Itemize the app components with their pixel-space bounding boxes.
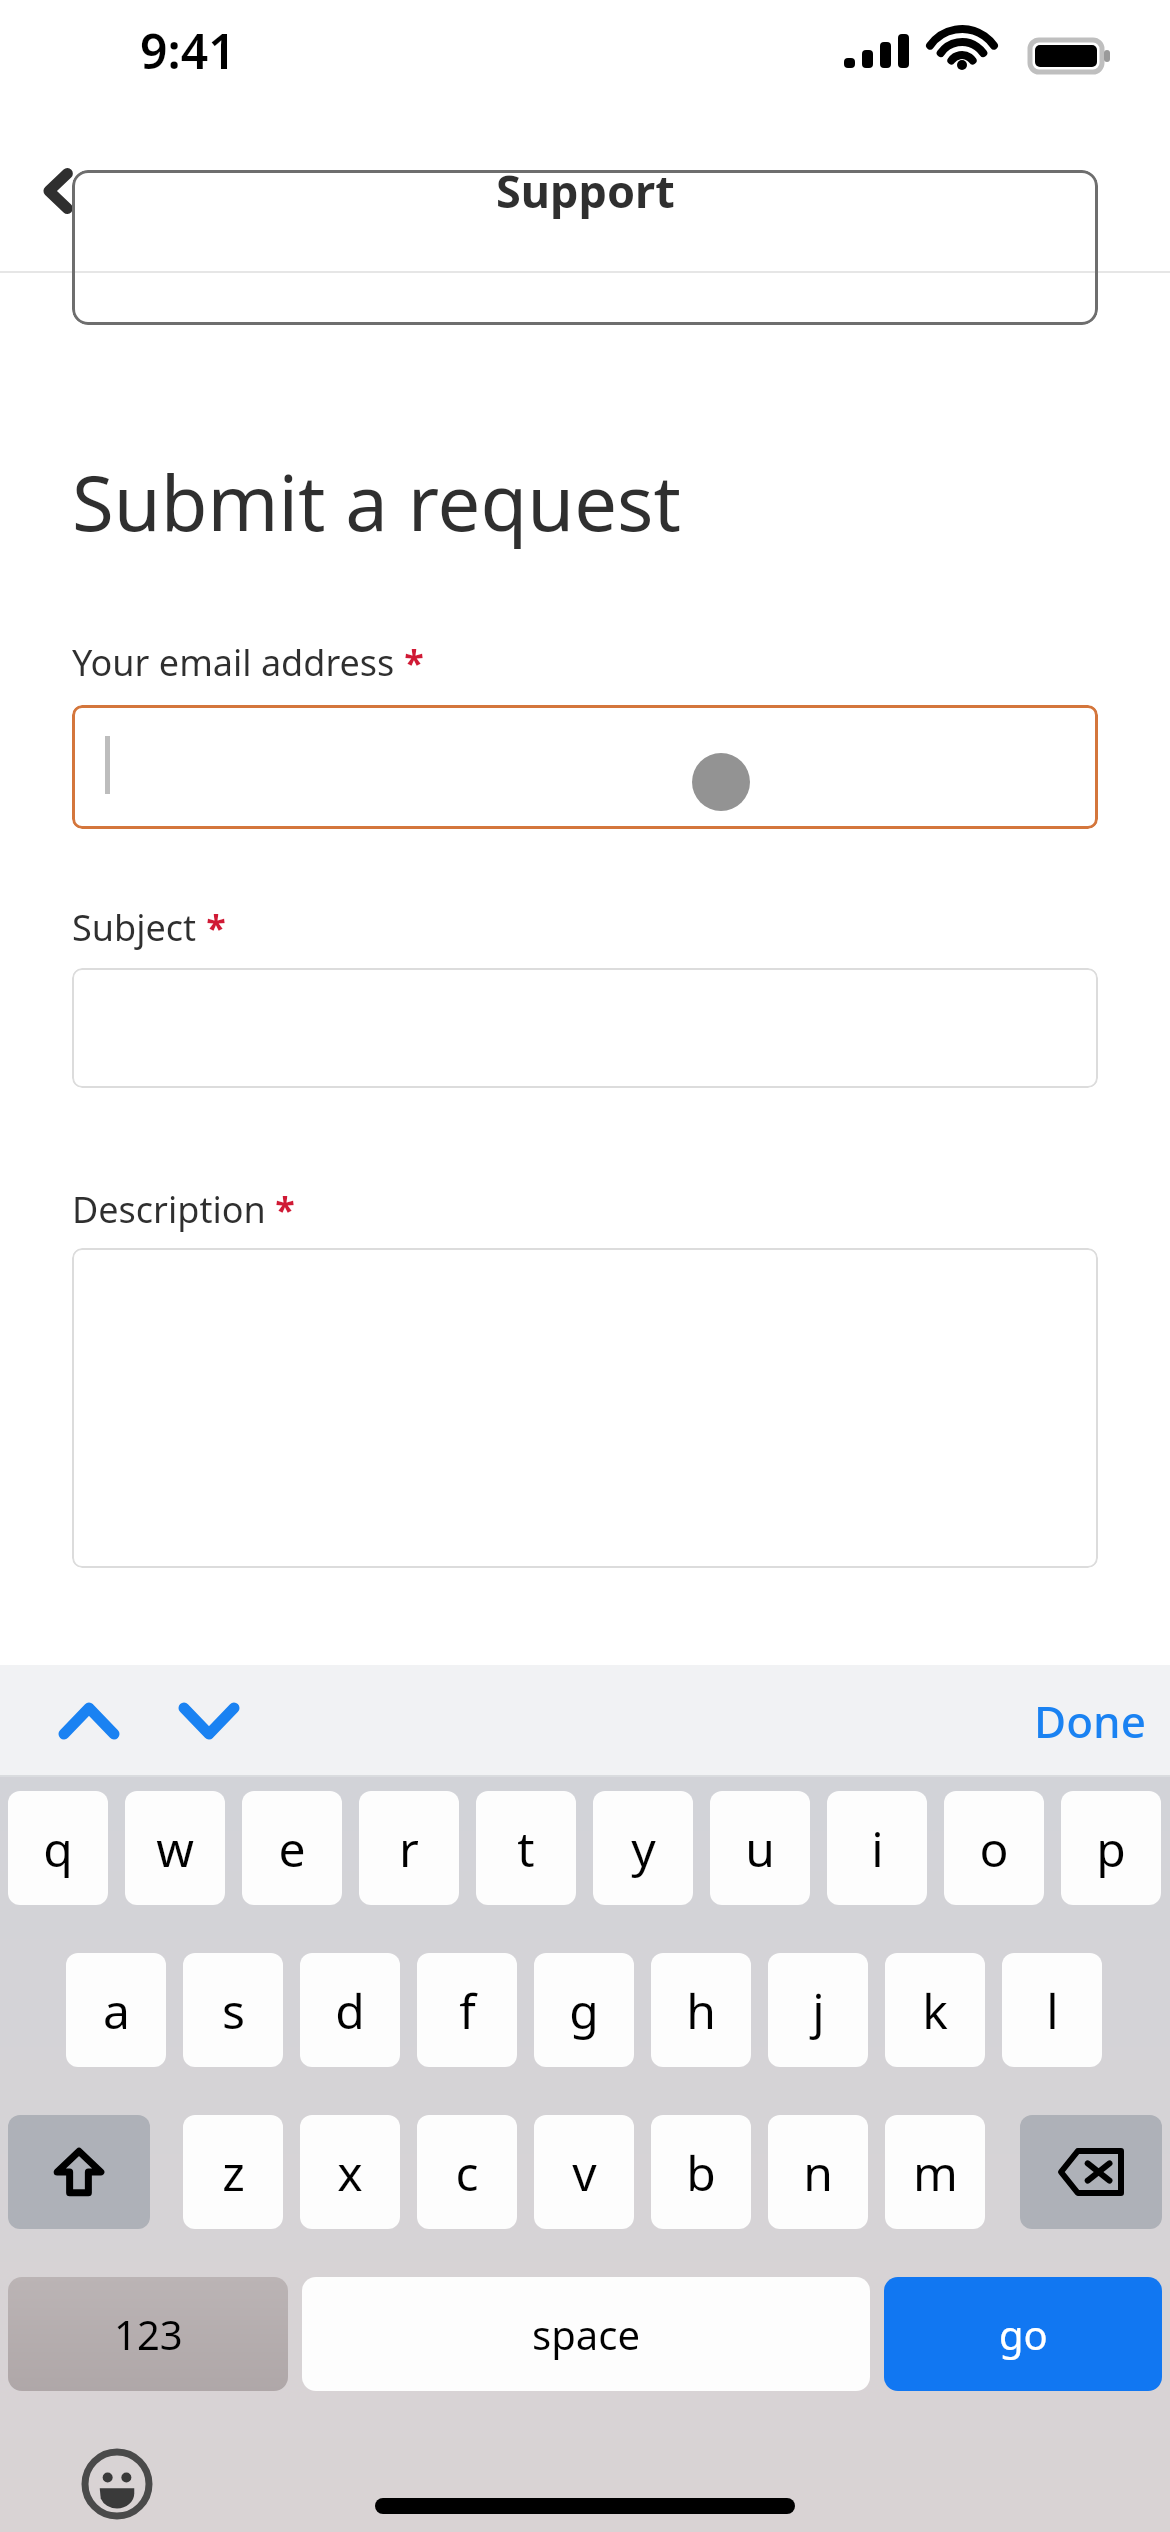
button[interactable]: s (183, 1953, 283, 2067)
staticText: j (812, 1978, 825, 2043)
button[interactable]: b (651, 2115, 751, 2229)
button[interactable]: f (417, 1953, 517, 2067)
button[interactable]: e (242, 1791, 342, 1905)
button[interactable]: h (651, 1953, 751, 2067)
staticText: Subject (72, 903, 197, 952)
staticText: 9:41 (140, 18, 236, 83)
button[interactable]: o (944, 1791, 1044, 1905)
button[interactable]: Next field (162, 1665, 256, 1777)
staticText: u (745, 1816, 775, 1881)
button[interactable]: x (300, 2115, 400, 2229)
button[interactable] (72, 170, 1098, 325)
staticText: n (803, 2140, 833, 2205)
staticText: c (455, 2140, 479, 2205)
staticText: q (43, 1816, 73, 1881)
staticText: a (103, 1978, 130, 2043)
staticText: o (979, 1816, 1009, 1881)
button[interactable]: Back (14, 145, 106, 237)
button[interactable]: Shift (8, 2115, 150, 2229)
button[interactable]: t (476, 1791, 576, 1905)
button[interactable]: Delete (1020, 2115, 1162, 2229)
button[interactable]: Previous field (42, 1665, 136, 1777)
staticText: k (922, 1978, 948, 2043)
staticText: * (197, 903, 226, 952)
staticText: x (337, 2140, 363, 2205)
button[interactable]: q (8, 1791, 108, 1905)
button[interactable]: v (534, 2115, 634, 2229)
button[interactable]: c (417, 2115, 517, 2229)
button[interactable]: Emoji keyboard (78, 2445, 156, 2523)
button[interactable]: m (885, 2115, 985, 2229)
button[interactable]: i (827, 1791, 927, 1905)
button[interactable]: d (300, 1953, 400, 2067)
staticText: m (913, 2140, 958, 2205)
button[interactable]: z (183, 2115, 283, 2229)
staticText: w (156, 1816, 194, 1881)
staticText: l (1046, 1978, 1059, 2043)
button[interactable]: u (710, 1791, 810, 1905)
staticText: y (631, 1816, 656, 1881)
button[interactable]: k (885, 1953, 985, 2067)
staticText: t (517, 1816, 535, 1881)
staticText: i (871, 1816, 884, 1881)
button[interactable]: Done (1034, 1665, 1146, 1777)
staticText: g (569, 1978, 599, 2043)
staticText: b (686, 2140, 716, 2205)
staticText: 123 (114, 2307, 183, 2361)
button[interactable] (72, 1248, 1098, 1568)
staticText: z (222, 2140, 245, 2205)
staticText: space (532, 2307, 640, 2361)
staticText: * (395, 638, 424, 687)
staticText: d (335, 1978, 365, 2043)
staticText: Description (72, 1185, 266, 1234)
button[interactable]: l (1002, 1953, 1102, 2067)
button[interactable]: j (768, 1953, 868, 2067)
staticText: h (686, 1978, 716, 2043)
button[interactable] (72, 705, 1098, 829)
staticText: Your email address (72, 638, 395, 687)
staticText: go (999, 2307, 1048, 2361)
staticText: f (459, 1978, 476, 2043)
button[interactable]: a (66, 1953, 166, 2067)
button[interactable]: g (534, 1953, 634, 2067)
staticText: s (222, 1978, 245, 2043)
button[interactable] (72, 968, 1098, 1088)
button[interactable]: y (593, 1791, 693, 1905)
staticText: Support (496, 160, 675, 221)
staticText: * (266, 1185, 295, 1234)
button[interactable]: space (302, 2277, 870, 2391)
staticText: Submit a request (72, 450, 681, 554)
button[interactable]: p (1061, 1791, 1161, 1905)
staticText: p (1096, 1816, 1126, 1881)
button[interactable]: go (884, 2277, 1162, 2391)
button[interactable]: r (359, 1791, 459, 1905)
staticText: v (572, 2140, 597, 2205)
staticText: r (399, 1816, 419, 1881)
staticText: Done (1034, 1691, 1146, 1751)
button[interactable]: w (125, 1791, 225, 1905)
button[interactable]: 123 (8, 2277, 288, 2391)
button[interactable]: n (768, 2115, 868, 2229)
staticText: e (278, 1816, 306, 1881)
